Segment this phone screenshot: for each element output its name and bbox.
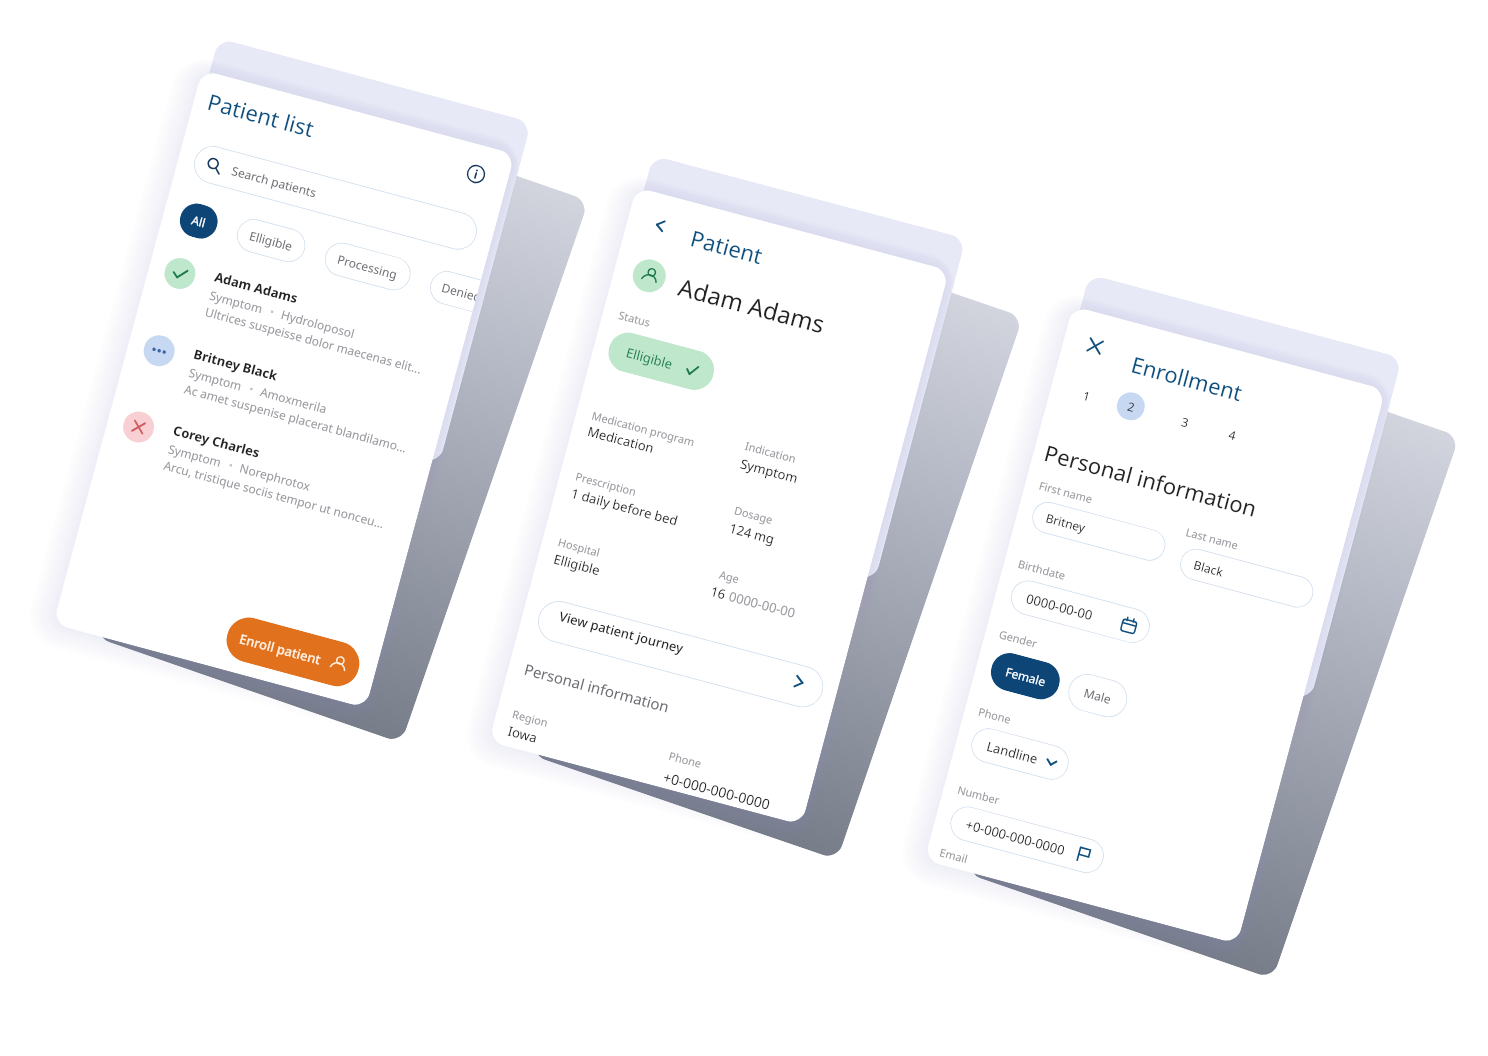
staticText: Phone bbox=[667, 748, 704, 771]
staticText: +0-000-000-0000 bbox=[964, 815, 1067, 859]
staticText: 2 bbox=[1126, 398, 1137, 415]
staticText: Hydroloposol bbox=[279, 306, 357, 341]
staticText: Elligible bbox=[552, 550, 603, 579]
button[interactable]: Adam Adams bbox=[155, 254, 459, 384]
staticText: 0000-00-00 bbox=[727, 587, 797, 622]
staticText: Patient list bbox=[204, 86, 318, 143]
staticText: Black bbox=[1192, 556, 1225, 579]
button[interactable]: Info bbox=[463, 161, 489, 187]
staticText: 0000-00-00 bbox=[1024, 589, 1095, 624]
button[interactable]: Processing bbox=[321, 239, 415, 294]
staticText: Email bbox=[938, 844, 970, 866]
button[interactable]: 4 bbox=[1215, 417, 1249, 452]
staticText: Symptom bbox=[208, 287, 265, 316]
staticText: Enroll patient bbox=[237, 629, 323, 669]
button[interactable]: View patient journey bbox=[533, 596, 828, 712]
button[interactable]: Elligible bbox=[604, 328, 719, 394]
staticText: Dosage bbox=[733, 502, 775, 527]
staticText: Symptom bbox=[738, 454, 800, 487]
staticText: 16 bbox=[709, 582, 728, 603]
staticText: Symptom bbox=[167, 440, 224, 470]
staticText: 124 mg bbox=[727, 519, 777, 548]
staticText: Male bbox=[1082, 684, 1113, 707]
staticText: +0-000-000-0000 bbox=[661, 767, 772, 814]
button[interactable]: 2 bbox=[1114, 389, 1148, 423]
staticText: View patient journey bbox=[557, 607, 685, 657]
staticText: Personal information bbox=[1041, 437, 1260, 523]
button[interactable]: 0000-00-00 bbox=[1007, 576, 1154, 647]
button[interactable]: Male bbox=[1064, 669, 1132, 722]
button[interactable]: +0-000-000-0000 bbox=[946, 802, 1108, 877]
button[interactable]: Enroll patient bbox=[221, 612, 364, 691]
staticText: Region bbox=[511, 706, 550, 730]
staticText: Ac amet suspenise placerat blandilamo... bbox=[183, 380, 409, 456]
staticText: All bbox=[190, 211, 208, 231]
staticText: Symptom bbox=[187, 364, 244, 394]
staticText: Elligible bbox=[248, 227, 294, 254]
staticText: Indication bbox=[744, 438, 798, 466]
staticText: Number bbox=[956, 782, 1001, 807]
staticText: Medication bbox=[586, 422, 656, 457]
staticText: Patient bbox=[687, 222, 767, 270]
button[interactable]: 1 bbox=[1069, 378, 1103, 412]
button[interactable]: Search patients bbox=[190, 141, 481, 254]
staticText: Iowa bbox=[506, 722, 539, 747]
button[interactable]: Britney bbox=[1028, 498, 1169, 564]
button[interactable]: Personal information bbox=[522, 659, 672, 717]
staticText: 1 daily before bed bbox=[569, 484, 680, 530]
staticText: Last name bbox=[1184, 524, 1240, 553]
button[interactable]: Back bbox=[646, 211, 674, 239]
staticText: Hospital bbox=[557, 534, 602, 560]
staticText: Adam Adams bbox=[213, 267, 300, 307]
button[interactable]: Landline bbox=[967, 724, 1073, 784]
button[interactable]: Black bbox=[1176, 545, 1317, 611]
staticText: 1 bbox=[1081, 387, 1092, 404]
staticText: Britney Black bbox=[192, 345, 279, 384]
button[interactable]: All bbox=[176, 200, 221, 242]
button[interactable]: Britney Black bbox=[134, 332, 438, 461]
staticText: Processing bbox=[336, 251, 400, 282]
staticText: Corey Charles bbox=[171, 421, 262, 461]
staticText: Enrollment bbox=[1128, 349, 1246, 407]
staticText: Landline bbox=[985, 737, 1041, 768]
staticText: 4 bbox=[1227, 426, 1238, 443]
staticText: Phone bbox=[977, 704, 1013, 727]
button[interactable]: Female bbox=[987, 649, 1064, 704]
staticText: First name bbox=[1037, 477, 1094, 506]
staticText: Age bbox=[718, 567, 741, 586]
staticText: Amoxmerila bbox=[259, 383, 329, 417]
staticText: Personal information bbox=[522, 659, 672, 717]
staticText: Adam Adams bbox=[675, 270, 828, 340]
staticText: Ultrices suspeisse dolor maecenas elit..… bbox=[203, 303, 424, 377]
staticText: Gender bbox=[997, 626, 1039, 651]
button[interactable]: Elligible bbox=[233, 215, 309, 266]
button[interactable]: Close bbox=[1081, 331, 1109, 359]
staticText: Elligible bbox=[624, 343, 675, 373]
button[interactable]: Denied bbox=[426, 267, 481, 312]
button[interactable]: Corey Charles bbox=[114, 408, 417, 537]
staticText: Norephrotox bbox=[238, 460, 313, 494]
staticText: 3 bbox=[1180, 413, 1190, 430]
staticText: Search patients bbox=[230, 162, 318, 200]
staticText: Birthdate bbox=[1016, 556, 1068, 583]
staticText: Arcu, tristique sociis tempor ut nonceu.… bbox=[162, 457, 386, 531]
staticText: Denied bbox=[440, 279, 479, 304]
button[interactable]: 3 bbox=[1167, 405, 1202, 439]
staticText: Britney bbox=[1044, 509, 1088, 535]
staticText: Female bbox=[1004, 663, 1048, 689]
staticText: Status bbox=[617, 307, 653, 330]
staticText: Medication program bbox=[590, 408, 697, 449]
staticText: Prescription bbox=[574, 468, 639, 499]
